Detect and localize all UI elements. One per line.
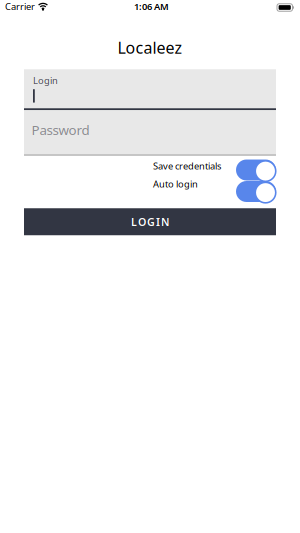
button[interactable]: Password (24, 110, 276, 156)
staticText: Auto login (153, 178, 198, 190)
staticText: L O G I N (131, 215, 169, 229)
staticText: Password (31, 121, 89, 139)
staticText: Save credentials (153, 160, 221, 172)
staticText: Login (33, 74, 58, 87)
button[interactable]: Auto login (236, 181, 276, 202)
staticText: Localeez (117, 37, 182, 58)
button[interactable]: Save credentials (236, 159, 276, 181)
button[interactable]: L O G I N (24, 208, 276, 235)
staticText: Carrier (5, 0, 35, 13)
button[interactable]: Login (24, 69, 276, 110)
staticText: 1:06 AM (134, 0, 169, 13)
